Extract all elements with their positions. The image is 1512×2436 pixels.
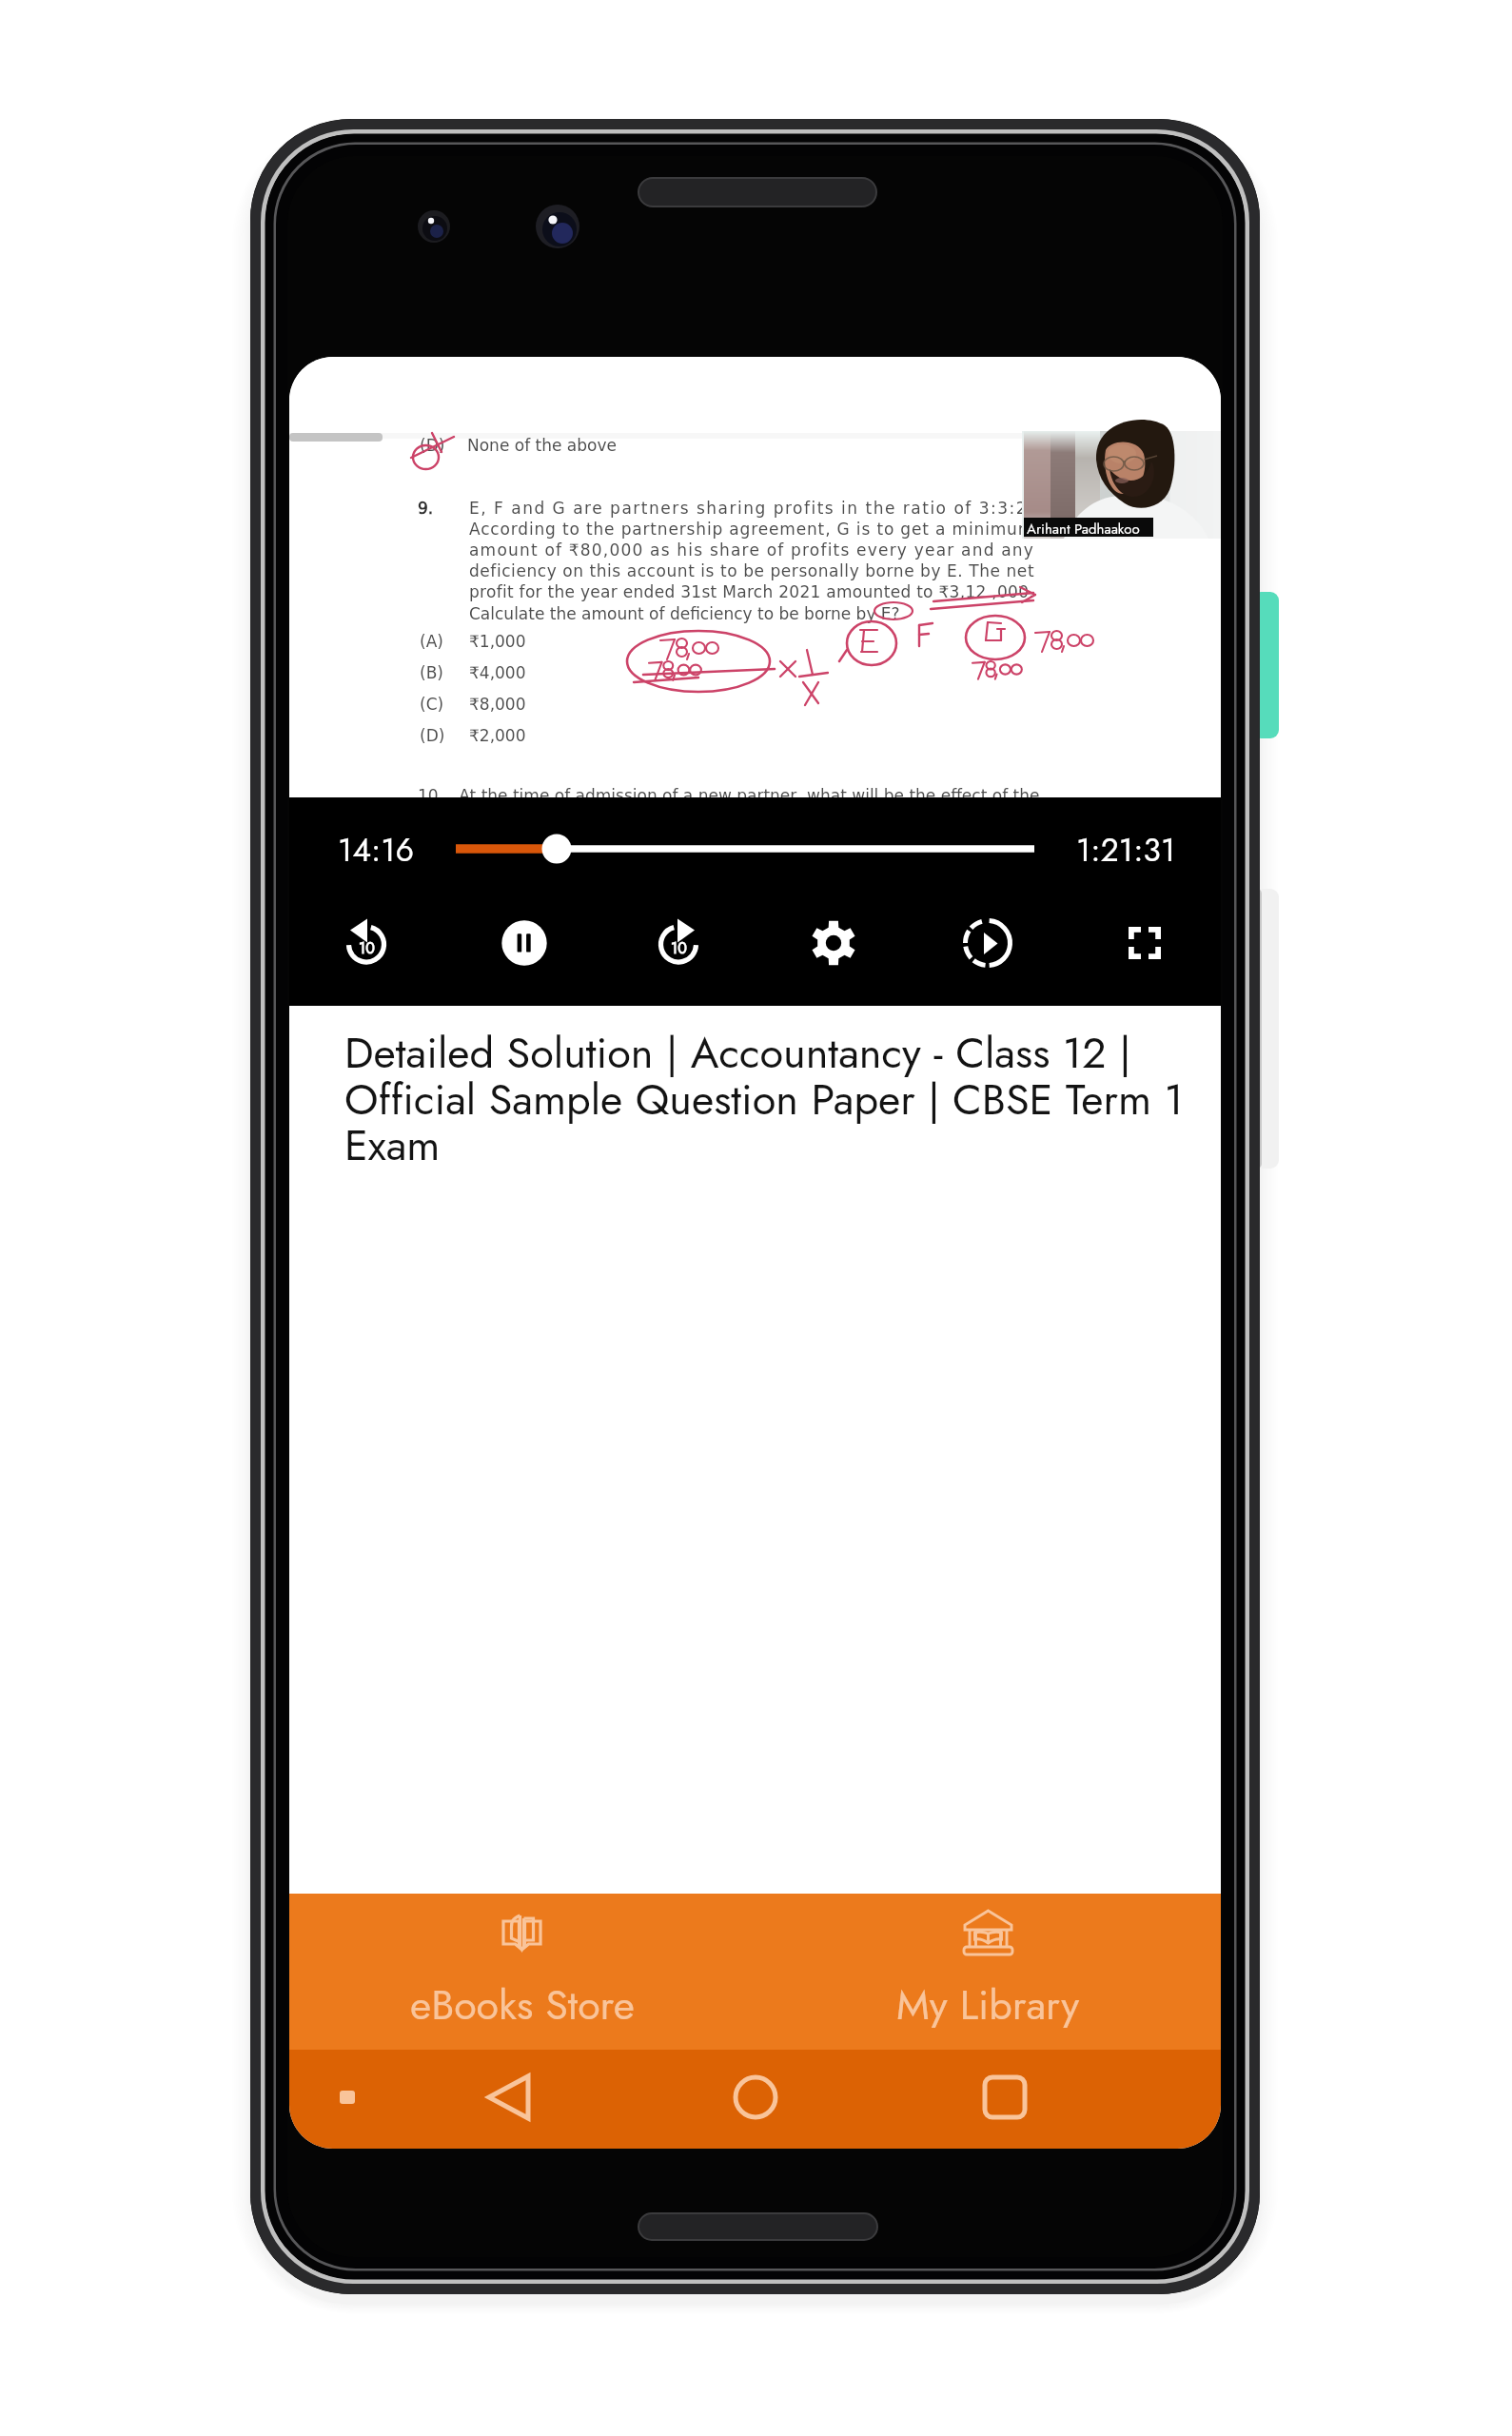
staticText: 10 [359,937,375,959]
button[interactable]: eBooks Store [289,1894,755,2050]
staticText: eBooks Store [410,1975,635,2034]
staticText: (C) [420,695,444,714]
staticText: (A) [420,632,443,651]
staticText: ₹2,000 [469,726,526,745]
button[interactable]: Playback speed [953,909,1022,977]
staticText: 10. At the time of admission of a new pa… [418,786,1040,805]
button[interactable]: Recent apps [946,2050,1064,2149]
staticText: (B) [420,663,443,682]
button[interactable]: Pause [490,909,559,977]
staticText: Arihant Padhaakoo [1027,519,1140,540]
staticText: amount of ₹80,000 as his share of profit… [469,540,1035,560]
button[interactable]: Seek bar [446,826,1044,872]
staticText: Detailed Solution | Accountancy - Class … [344,1022,1197,1175]
button[interactable]: Video [289,433,1221,797]
staticText: My Library [896,1975,1080,2034]
staticText: (D) [420,436,445,455]
staticText: ₹1,000 [469,632,526,651]
button[interactable]: Replay 10 seconds [332,909,401,977]
button[interactable]: My Library [755,1894,1221,2050]
button[interactable]: Full screen [1110,909,1179,977]
staticText: None of the above [467,436,617,455]
staticText: Calculate the amount of deficiency to be… [469,604,900,623]
staticText: 9. [418,499,434,518]
staticText: According to the partnership agreement, … [469,520,1035,539]
button[interactable]: Back [451,2050,569,2149]
staticText: 1:21:31 [1076,827,1176,874]
button[interactable]: Home [697,2050,815,2149]
staticText: deficiency on this account is to be pers… [469,561,1035,580]
button[interactable]: Settings [799,909,868,977]
staticText: profit for the year ended 31st March 202… [469,582,1035,601]
staticText: 14:16 [338,827,415,874]
staticText: (D) [420,726,445,745]
staticText: 10 [671,937,687,959]
staticText: ₹4,000 [469,663,526,682]
staticText: E, F and G are partners sharing profits … [469,499,1035,518]
button[interactable]: Forward 10 seconds [644,909,713,977]
staticText: ₹8,000 [469,695,526,714]
